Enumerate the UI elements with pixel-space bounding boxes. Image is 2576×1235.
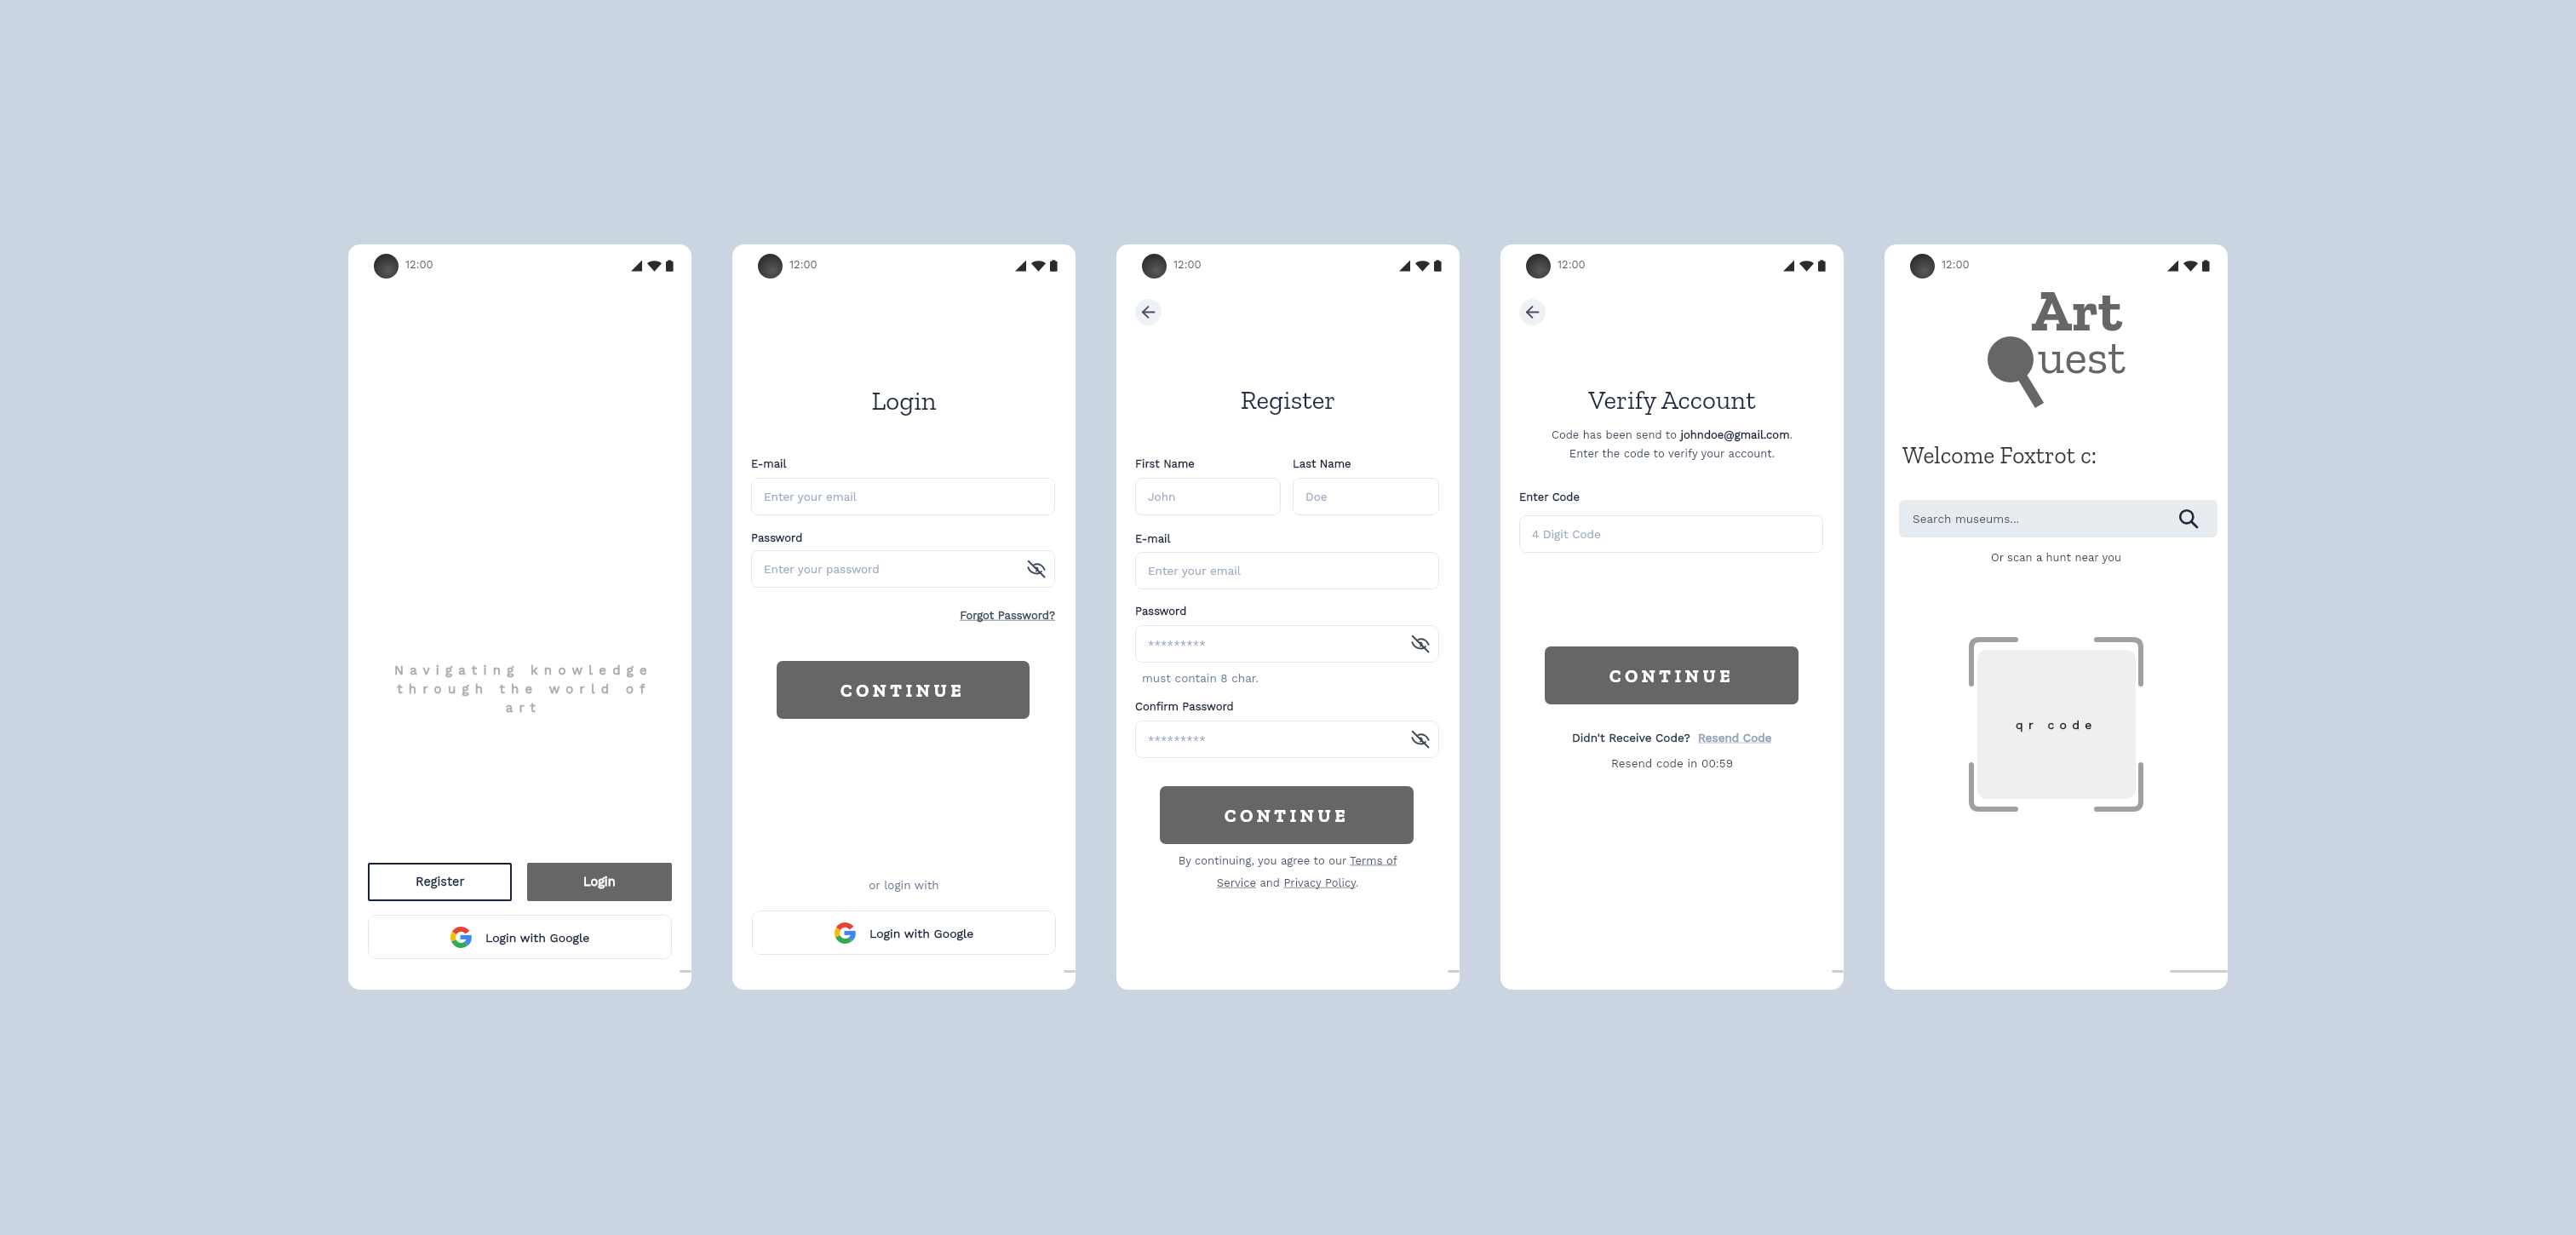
staticText: Register xyxy=(416,875,465,889)
staticText: Password xyxy=(1135,605,1187,617)
staticText: CONTINUE xyxy=(1225,805,1350,826)
staticText: 12:00 xyxy=(1558,258,1586,271)
button[interactable]: 4 Digit Code xyxy=(1519,515,1823,553)
staticText: Verify Account xyxy=(1500,384,1844,416)
button[interactable]: Login with Google xyxy=(752,910,1056,955)
staticText: uest xyxy=(2038,328,2126,385)
button[interactable]: Search museums... xyxy=(1899,500,2217,537)
staticText: Resend code in 00:59 xyxy=(1500,756,1844,770)
staticText: Navigating knowledge through the world o… xyxy=(392,663,656,715)
button[interactable]: Register xyxy=(368,863,512,901)
button[interactable]: CONTINUE xyxy=(1545,646,1799,704)
button[interactable]: CONTINUE xyxy=(1160,786,1414,844)
staticText: Code has been send to johndoe@gmail.com.… xyxy=(1517,428,1827,461)
button[interactable]: Search xyxy=(2179,509,2199,529)
staticText: Enter your password xyxy=(764,562,880,576)
staticText: Welcome Foxtrot c: xyxy=(1902,441,2097,469)
staticText: E-mail xyxy=(1135,532,1171,545)
staticText: Search museums... xyxy=(1913,512,2020,526)
staticText: Login xyxy=(583,875,616,889)
button[interactable]: Enter your email xyxy=(1135,552,1439,589)
button[interactable]: John xyxy=(1135,478,1281,515)
staticText: qr code xyxy=(2016,718,2097,732)
staticText: 12:00 xyxy=(405,258,433,271)
staticText: ********* xyxy=(1148,734,1206,747)
staticText: Art xyxy=(2031,274,2122,346)
button[interactable]: Show password xyxy=(1411,635,1430,653)
staticText: 12:00 xyxy=(789,258,818,271)
staticText: 12:00 xyxy=(1942,258,1970,271)
staticText: must contain 8 char. xyxy=(1142,671,1259,685)
staticText: CONTINUE xyxy=(840,680,966,701)
staticText: E-mail xyxy=(751,457,787,470)
staticText: Resend Code xyxy=(1698,731,1772,744)
staticText: 12:00 xyxy=(1173,258,1202,271)
button[interactable]: ********* xyxy=(1135,625,1439,663)
button[interactable]: Show password xyxy=(1411,730,1430,749)
button[interactable]: Show password xyxy=(1027,560,1046,578)
button[interactable]: Login with Google xyxy=(368,915,672,959)
staticText: 4 Digit Code xyxy=(1532,527,1601,541)
staticText: Login xyxy=(732,385,1076,416)
staticText: Forgot Password? xyxy=(937,609,1055,622)
staticText: First Name xyxy=(1135,457,1195,470)
staticText: Password xyxy=(751,531,803,544)
staticText: or login with xyxy=(732,878,1076,892)
button[interactable]: By continuing, you agree to our Terms of… xyxy=(1174,854,1401,889)
staticText: Login with Google xyxy=(869,927,974,940)
button[interactable]: Resend Code xyxy=(1698,731,1772,744)
button[interactable]: Login xyxy=(527,863,672,901)
staticText: Didn't Receive Code? xyxy=(1572,731,1690,744)
staticText: CONTINUE xyxy=(1609,665,1735,686)
button[interactable]: Enter your password xyxy=(751,550,1055,588)
staticText: Last Name xyxy=(1293,457,1351,470)
staticText: ********* xyxy=(1148,639,1206,652)
button[interactable]: Back xyxy=(1135,299,1162,325)
staticText: Enter your email xyxy=(1148,564,1241,577)
staticText: Or scan a hunt near you xyxy=(1885,551,2228,564)
staticText: Confirm Password xyxy=(1135,700,1234,713)
button[interactable]: ********* xyxy=(1135,721,1439,758)
staticText: Enter Code xyxy=(1519,491,1581,503)
staticText: Login with Google xyxy=(485,931,590,945)
button[interactable]: Enter your email xyxy=(751,478,1055,515)
staticText: John xyxy=(1148,490,1176,503)
staticText: Enter your email xyxy=(764,490,857,503)
button[interactable]: CONTINUE xyxy=(777,661,1030,719)
button[interactable]: Back xyxy=(1519,299,1546,325)
staticText: Doe xyxy=(1305,490,1328,503)
button[interactable]: Doe xyxy=(1293,478,1439,515)
button[interactable]: Forgot Password? xyxy=(937,609,1055,622)
staticText: Register xyxy=(1116,384,1460,416)
